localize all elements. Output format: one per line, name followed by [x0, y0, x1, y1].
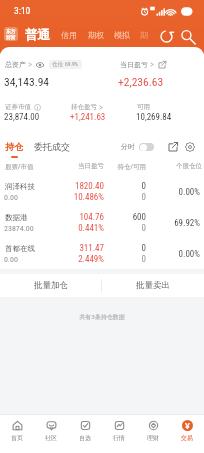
staticText: 行情	[113, 434, 125, 442]
staticText: 首页	[11, 434, 23, 442]
staticText: 数据港	[5, 213, 28, 222]
button[interactable]: ¥	[170, 415, 204, 453]
staticText: 信用	[61, 30, 77, 40]
staticText: 持仓	[5, 141, 23, 152]
button[interactable]: 数据港	[0, 207, 204, 238]
button[interactable]: Account	[4, 27, 18, 41]
staticText: 0	[102, 223, 146, 234]
staticText: 23874.00	[4, 224, 34, 233]
staticText: 仓位	[52, 61, 63, 68]
button[interactable]: 首都在线	[0, 238, 204, 269]
staticText: 委托成交	[34, 141, 70, 152]
staticText: +1,241.63	[70, 112, 106, 123]
staticText: 持仓盈亏	[71, 103, 97, 111]
staticText: 交易	[181, 434, 193, 442]
button[interactable]: 持仓	[5, 141, 23, 158]
button[interactable]: Toggle chart	[139, 143, 154, 151]
staticText: 311.47	[60, 243, 104, 254]
button[interactable]: 行情	[102, 415, 136, 453]
staticText: 600	[102, 212, 146, 223]
staticText: 10,269.84	[136, 112, 172, 123]
staticText: 财富	[6, 34, 16, 40]
staticText: 当日盈亏	[120, 60, 148, 69]
staticText: 模拟	[114, 30, 130, 40]
staticText: 10.486%	[60, 192, 104, 203]
button[interactable]: Export	[168, 142, 178, 152]
staticText: 0.00%	[156, 249, 200, 260]
staticText: 当日盈亏	[64, 162, 104, 170]
staticText: 0.441%	[60, 223, 104, 234]
staticText: 总资产	[5, 60, 26, 69]
button[interactable]: Settings	[185, 142, 195, 152]
staticText: 批量卖出	[136, 280, 170, 291]
button[interactable]: Refresh	[159, 29, 174, 44]
button[interactable]: Search	[180, 29, 195, 44]
staticText: 社区	[45, 434, 57, 442]
staticText: 104.76	[60, 212, 104, 223]
button[interactable]: 自选	[68, 415, 102, 453]
staticText: 证券市值	[5, 103, 31, 111]
staticText: 普通	[25, 27, 50, 43]
staticText: 自选	[79, 434, 91, 442]
staticText: 共有3条持仓数据	[0, 313, 204, 321]
button[interactable]: 社区	[34, 415, 68, 453]
staticText: 首都在线	[5, 244, 35, 253]
staticText: 0	[102, 243, 146, 254]
staticText: 东方	[6, 28, 16, 34]
staticText: 持仓/可用	[106, 162, 146, 171]
staticText: 润泽科技	[5, 182, 35, 191]
staticText: 股票/市值	[5, 162, 34, 171]
staticText: 34,143.94	[4, 75, 50, 88]
staticText: 69.92%	[156, 218, 200, 229]
staticText: 23,874.00	[4, 112, 40, 123]
button[interactable]: 批量加仓	[0, 274, 101, 297]
staticText: 分时	[121, 142, 135, 151]
button[interactable]: 批量卖出	[102, 274, 204, 297]
button[interactable]: 理财	[136, 415, 170, 453]
button[interactable]: 委托成交	[34, 141, 70, 152]
staticText: 0.00%	[156, 187, 200, 198]
staticText: 0.00	[4, 193, 18, 202]
staticText: 0	[102, 181, 146, 192]
staticText: 0	[102, 192, 146, 203]
staticText: 可用	[137, 103, 150, 111]
staticText: 2.449%	[60, 254, 104, 265]
staticText: 0.00	[4, 255, 18, 264]
staticText: 69.9%	[65, 61, 79, 67]
staticText: 理财	[147, 434, 159, 442]
staticText: 期权	[88, 30, 104, 40]
button[interactable]: 首页	[0, 415, 34, 453]
staticText: 3:10	[14, 5, 31, 16]
staticText: +2,236.63	[118, 75, 164, 88]
staticText: ¥	[185, 420, 190, 431]
staticText: 期	[140, 30, 148, 40]
button[interactable]: 润泽科技	[0, 176, 204, 207]
staticText: 个股仓位	[162, 162, 202, 170]
staticText: 1820.40	[60, 181, 104, 192]
staticText: 批量加仓	[34, 280, 68, 291]
staticText: 0	[102, 254, 146, 265]
